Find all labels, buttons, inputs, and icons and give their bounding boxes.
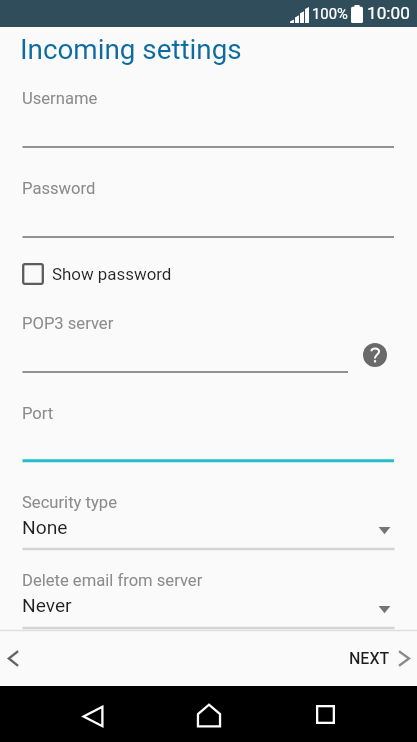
button[interactable]: Username	[0, 81, 417, 154]
button[interactable]: Help	[363, 343, 387, 367]
staticText: NEXT	[349, 649, 390, 668]
button[interactable]: Delete email from server	[0, 563, 417, 636]
button[interactable]: Port	[0, 396, 417, 469]
staticText: Security type	[22, 493, 117, 512]
button[interactable]: Show password	[22, 254, 172, 294]
button[interactable]: Home	[185, 691, 233, 739]
staticText: Show password	[52, 264, 172, 284]
staticText: 100%	[312, 5, 348, 22]
button[interactable]: Back	[69, 692, 117, 740]
staticText: Incoming settings	[20, 33, 242, 66]
button[interactable]: POP3 server	[0, 306, 417, 379]
staticText: POP3 server	[22, 314, 114, 333]
button[interactable]: Previous	[0, 641, 30, 675]
staticText: Port	[22, 404, 54, 423]
staticText: None	[22, 516, 68, 539]
staticText: 10:00	[367, 3, 410, 23]
button[interactable]: Password	[0, 171, 417, 244]
staticText: Never	[22, 594, 72, 617]
button[interactable]: Security type	[0, 485, 417, 557]
staticText: Username	[22, 89, 98, 108]
button[interactable]: Recent apps	[301, 690, 349, 738]
staticText: Password	[22, 179, 96, 198]
button[interactable]: NEXT	[349, 638, 411, 678]
staticText: Delete email from server	[22, 571, 203, 590]
